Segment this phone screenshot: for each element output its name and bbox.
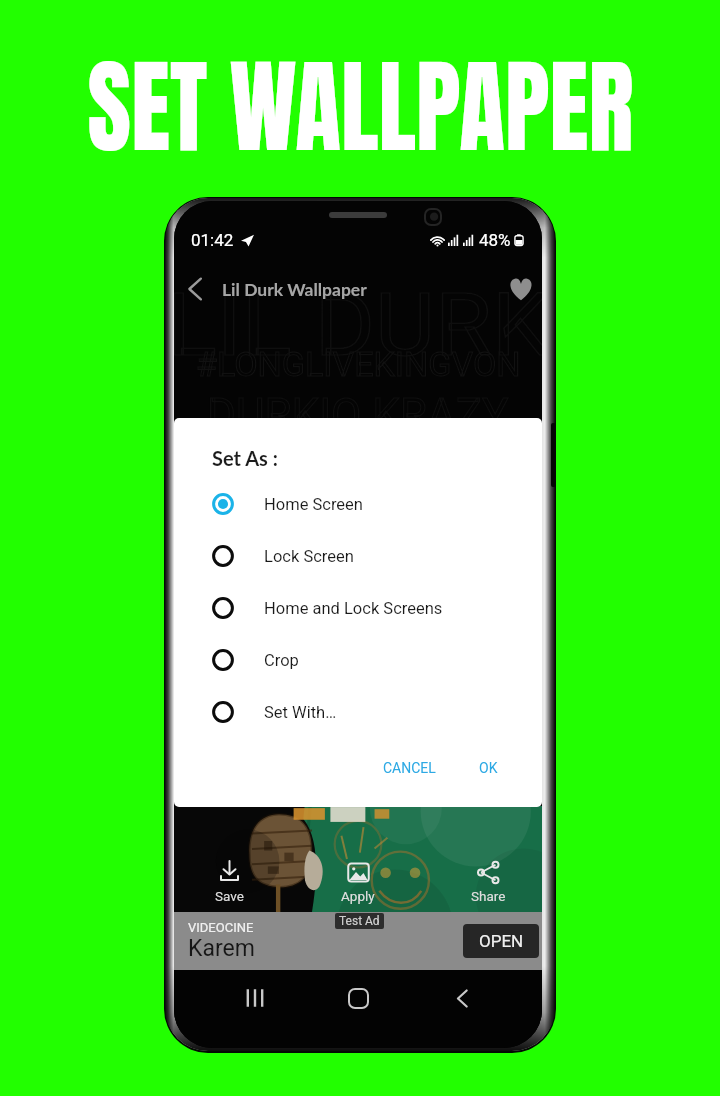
button[interactable]: Share <box>450 860 526 910</box>
button[interactable]: Set With… <box>212 686 530 738</box>
button[interactable]: Home and Lock Screens <box>212 582 530 634</box>
staticText: Share <box>471 888 506 904</box>
button[interactable]: Favorite <box>500 268 542 310</box>
staticText: DURKIO KRAZY <box>207 389 509 441</box>
button[interactable]: Home <box>335 975 381 1021</box>
button[interactable]: CANCEL <box>371 754 448 782</box>
button[interactable]: Recent apps <box>232 975 278 1021</box>
button[interactable]: Back <box>175 268 217 310</box>
staticText: Crop <box>264 651 299 670</box>
staticText: 48% <box>479 230 511 250</box>
button[interactable]: Lock Screen <box>212 530 530 582</box>
button[interactable]: Back <box>439 975 485 1021</box>
staticText: OPEN <box>479 931 524 951</box>
staticText: Set As : <box>212 446 278 470</box>
staticText: Lock Screen <box>264 547 354 566</box>
staticText: VIDEOCINE <box>188 920 254 935</box>
staticText: OK <box>479 760 498 776</box>
button[interactable]: Save <box>191 860 267 910</box>
staticText: Test Ad <box>339 914 380 928</box>
button[interactable]: OPEN <box>463 924 539 958</box>
staticText: Apply <box>341 888 375 904</box>
staticText: Save <box>215 888 244 904</box>
staticText: SET WALLPAPER <box>87 30 634 184</box>
button[interactable]: OK <box>467 754 510 782</box>
staticText: Home and Lock Screens <box>264 599 443 618</box>
button[interactable]: Home Screen <box>212 478 530 530</box>
button[interactable]: Apply <box>320 860 396 910</box>
staticText: LIL DURK <box>174 273 542 376</box>
staticText: #LONGLIVEKINGVON <box>196 344 521 384</box>
staticText: CANCEL <box>383 760 436 776</box>
staticText: Lil Durk Wallpaper <box>222 279 367 300</box>
staticText: Set With… <box>264 703 337 722</box>
button[interactable]: Crop <box>212 634 530 686</box>
staticText: Karem <box>188 935 255 962</box>
staticText: Home Screen <box>264 495 363 514</box>
staticText: 01:42 <box>191 230 234 250</box>
